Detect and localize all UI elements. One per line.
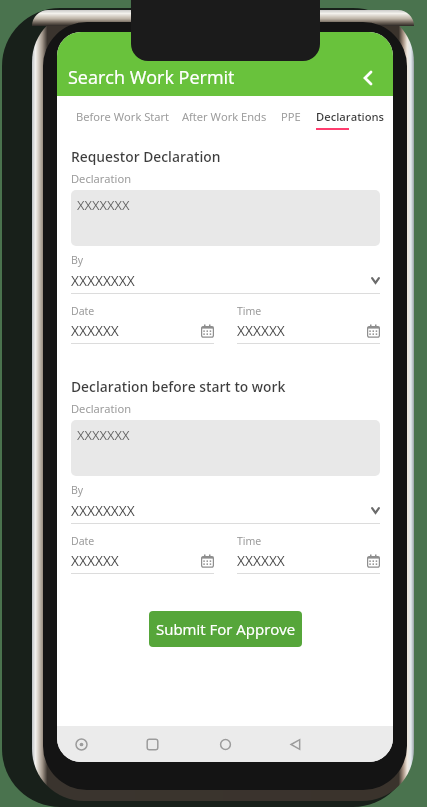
button[interactable]: Home xyxy=(210,729,240,759)
staticText: XXXXXXXX xyxy=(71,501,135,520)
staticText: By xyxy=(71,483,84,497)
button[interactable]: Back xyxy=(351,61,385,95)
button[interactable]: Back xyxy=(280,729,310,759)
staticText: Time xyxy=(237,304,262,318)
button[interactable]: Declarations xyxy=(310,103,390,131)
button[interactable]: Submit For Approve xyxy=(149,611,302,647)
staticText: Requestor Declaration xyxy=(71,147,221,166)
staticText: Date xyxy=(71,304,95,318)
button[interactable]: Assistant xyxy=(66,729,96,759)
staticText: Date xyxy=(71,534,95,548)
button[interactable]: Before Work Start xyxy=(70,103,175,131)
staticText: Before Work Start xyxy=(76,109,170,124)
button[interactable] xyxy=(71,251,380,296)
staticText: PPE xyxy=(281,109,301,124)
button[interactable]: PPE xyxy=(275,103,307,131)
staticText: Declarations xyxy=(316,109,385,124)
staticText: XXXXXX xyxy=(71,321,119,340)
staticText: XXXXXX xyxy=(71,551,119,570)
staticText: XXXXXX xyxy=(237,321,285,340)
button[interactable] xyxy=(71,531,214,576)
staticText: XXXXXX xyxy=(237,551,285,570)
button[interactable] xyxy=(71,420,380,476)
staticText: By xyxy=(71,253,84,267)
staticText: XXXXXXXX xyxy=(71,271,135,290)
staticText: Declaration xyxy=(71,171,131,186)
staticText: XXXXXXX xyxy=(77,426,130,444)
staticText: XXXXXXX xyxy=(77,196,130,214)
staticText: Declaration before start to work xyxy=(71,377,286,396)
button[interactable] xyxy=(71,481,380,526)
button[interactable]: Recents xyxy=(137,729,167,759)
staticText: After Work Ends xyxy=(182,109,267,124)
button[interactable] xyxy=(237,531,380,576)
staticText: Time xyxy=(237,534,262,548)
staticText: Declaration xyxy=(71,401,131,416)
button[interactable] xyxy=(71,190,380,246)
staticText: Search Work Permit xyxy=(68,65,235,90)
button[interactable]: After Work Ends xyxy=(176,103,274,131)
button[interactable] xyxy=(71,301,214,346)
button[interactable] xyxy=(237,301,380,346)
staticText: Submit For Approve xyxy=(156,619,296,639)
